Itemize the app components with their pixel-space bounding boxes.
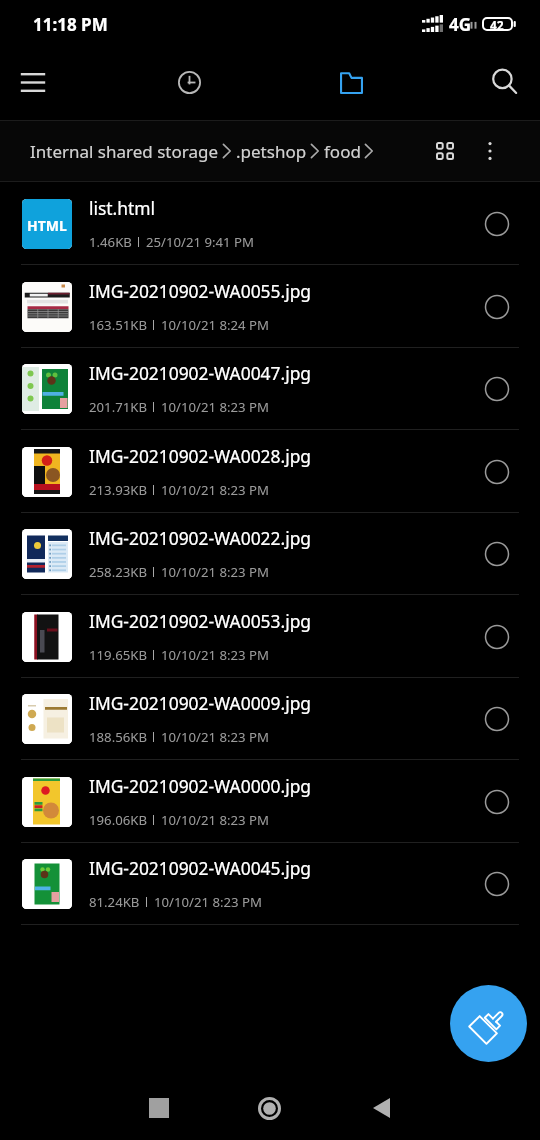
button[interactable]: Select file bbox=[474, 614, 520, 660]
staticText: 258.23KB bbox=[89, 563, 147, 581]
button[interactable]: HTML bbox=[0, 182, 540, 265]
button[interactable]: IMG-20210902-WA0053.jpg bbox=[0, 595, 540, 678]
button[interactable]: IMG-20210902-WA0055.jpg bbox=[0, 265, 540, 348]
staticText: IMG-20210902-WA0053.jpg bbox=[89, 609, 312, 633]
button[interactable]: IMG-20210902-WA0000.jpg bbox=[0, 760, 540, 843]
staticText: list.html bbox=[89, 196, 156, 220]
button[interactable]: IMG-20210902-WA0047.jpg bbox=[0, 347, 540, 430]
staticText: IMG-20210902-WA0022.jpg bbox=[89, 526, 312, 550]
staticText: IMG-20210902-WA0055.jpg bbox=[89, 279, 312, 303]
staticText: IMG-20210902-WA0047.jpg bbox=[89, 361, 312, 385]
staticText: 188.56KB bbox=[89, 728, 147, 746]
button[interactable]: Select file bbox=[474, 696, 520, 742]
staticText: 213.93KB bbox=[89, 481, 147, 499]
staticText: 10/10/21 8:23 PM bbox=[161, 728, 270, 746]
button[interactable]: Recents bbox=[130, 1080, 187, 1140]
button[interactable]: IMG-20210902-WA0028.jpg bbox=[0, 430, 540, 513]
button[interactable]: Menu bbox=[5, 54, 61, 110]
button[interactable]: Search bbox=[477, 54, 533, 110]
button[interactable]: More options bbox=[466, 121, 514, 181]
button[interactable]: Grid view bbox=[420, 121, 469, 181]
button[interactable]: Select file bbox=[474, 201, 520, 247]
staticText: 81.24KB bbox=[89, 893, 140, 911]
staticText: .petshop bbox=[236, 140, 307, 163]
button[interactable]: Select file bbox=[474, 449, 520, 495]
button[interactable]: Home bbox=[241, 1080, 298, 1140]
staticText: 10/10/21 8:23 PM bbox=[161, 646, 270, 664]
button[interactable]: Clean up bbox=[450, 985, 527, 1062]
button[interactable]: Internal shared storage bbox=[30, 121, 378, 181]
staticText: 11:18 PM bbox=[33, 13, 108, 36]
button[interactable]: Select file bbox=[474, 779, 520, 825]
staticText: 10/10/21 8:23 PM bbox=[161, 481, 270, 499]
staticText: 163.51KB bbox=[89, 316, 147, 334]
staticText: 10/10/21 8:24 PM bbox=[161, 316, 270, 334]
staticText: 10/10/21 8:23 PM bbox=[161, 398, 270, 416]
staticText: IMG-20210902-WA0045.jpg bbox=[89, 856, 312, 880]
button[interactable]: Select file bbox=[474, 861, 520, 907]
button[interactable]: Select file bbox=[474, 284, 520, 330]
button[interactable]: IMG-20210902-WA0045.jpg bbox=[0, 842, 540, 925]
button[interactable]: Back bbox=[352, 1080, 409, 1140]
staticText: food bbox=[324, 140, 361, 163]
staticText: 4G bbox=[449, 13, 472, 36]
staticText: 1.46KB bbox=[89, 233, 132, 251]
button[interactable]: Folders bbox=[323, 54, 379, 110]
staticText: IMG-20210902-WA0009.jpg bbox=[89, 691, 312, 715]
staticText: 119.65KB bbox=[89, 646, 147, 664]
staticText: 10/10/21 8:23 PM bbox=[161, 811, 270, 829]
staticText: Internal shared storage bbox=[30, 140, 219, 163]
button[interactable]: IMG-20210902-WA0009.jpg bbox=[0, 677, 540, 760]
button[interactable]: Select file bbox=[474, 531, 520, 577]
staticText: IMG-20210902-WA0028.jpg bbox=[89, 444, 312, 468]
staticText: 10/10/21 8:23 PM bbox=[161, 563, 270, 581]
staticText: HTML bbox=[27, 216, 67, 235]
staticText: 201.71KB bbox=[89, 398, 147, 416]
button[interactable]: Select file bbox=[474, 366, 520, 412]
staticText: IMG-20210902-WA0000.jpg bbox=[89, 774, 312, 798]
staticText: 196.06KB bbox=[89, 811, 147, 829]
staticText: 42 bbox=[490, 17, 504, 31]
staticText: 25/10/21 9:41 PM bbox=[146, 233, 255, 251]
button[interactable]: Recent files bbox=[161, 54, 217, 110]
staticText: 10/10/21 8:23 PM bbox=[154, 893, 263, 911]
button[interactable]: IMG-20210902-WA0022.jpg bbox=[0, 512, 540, 595]
